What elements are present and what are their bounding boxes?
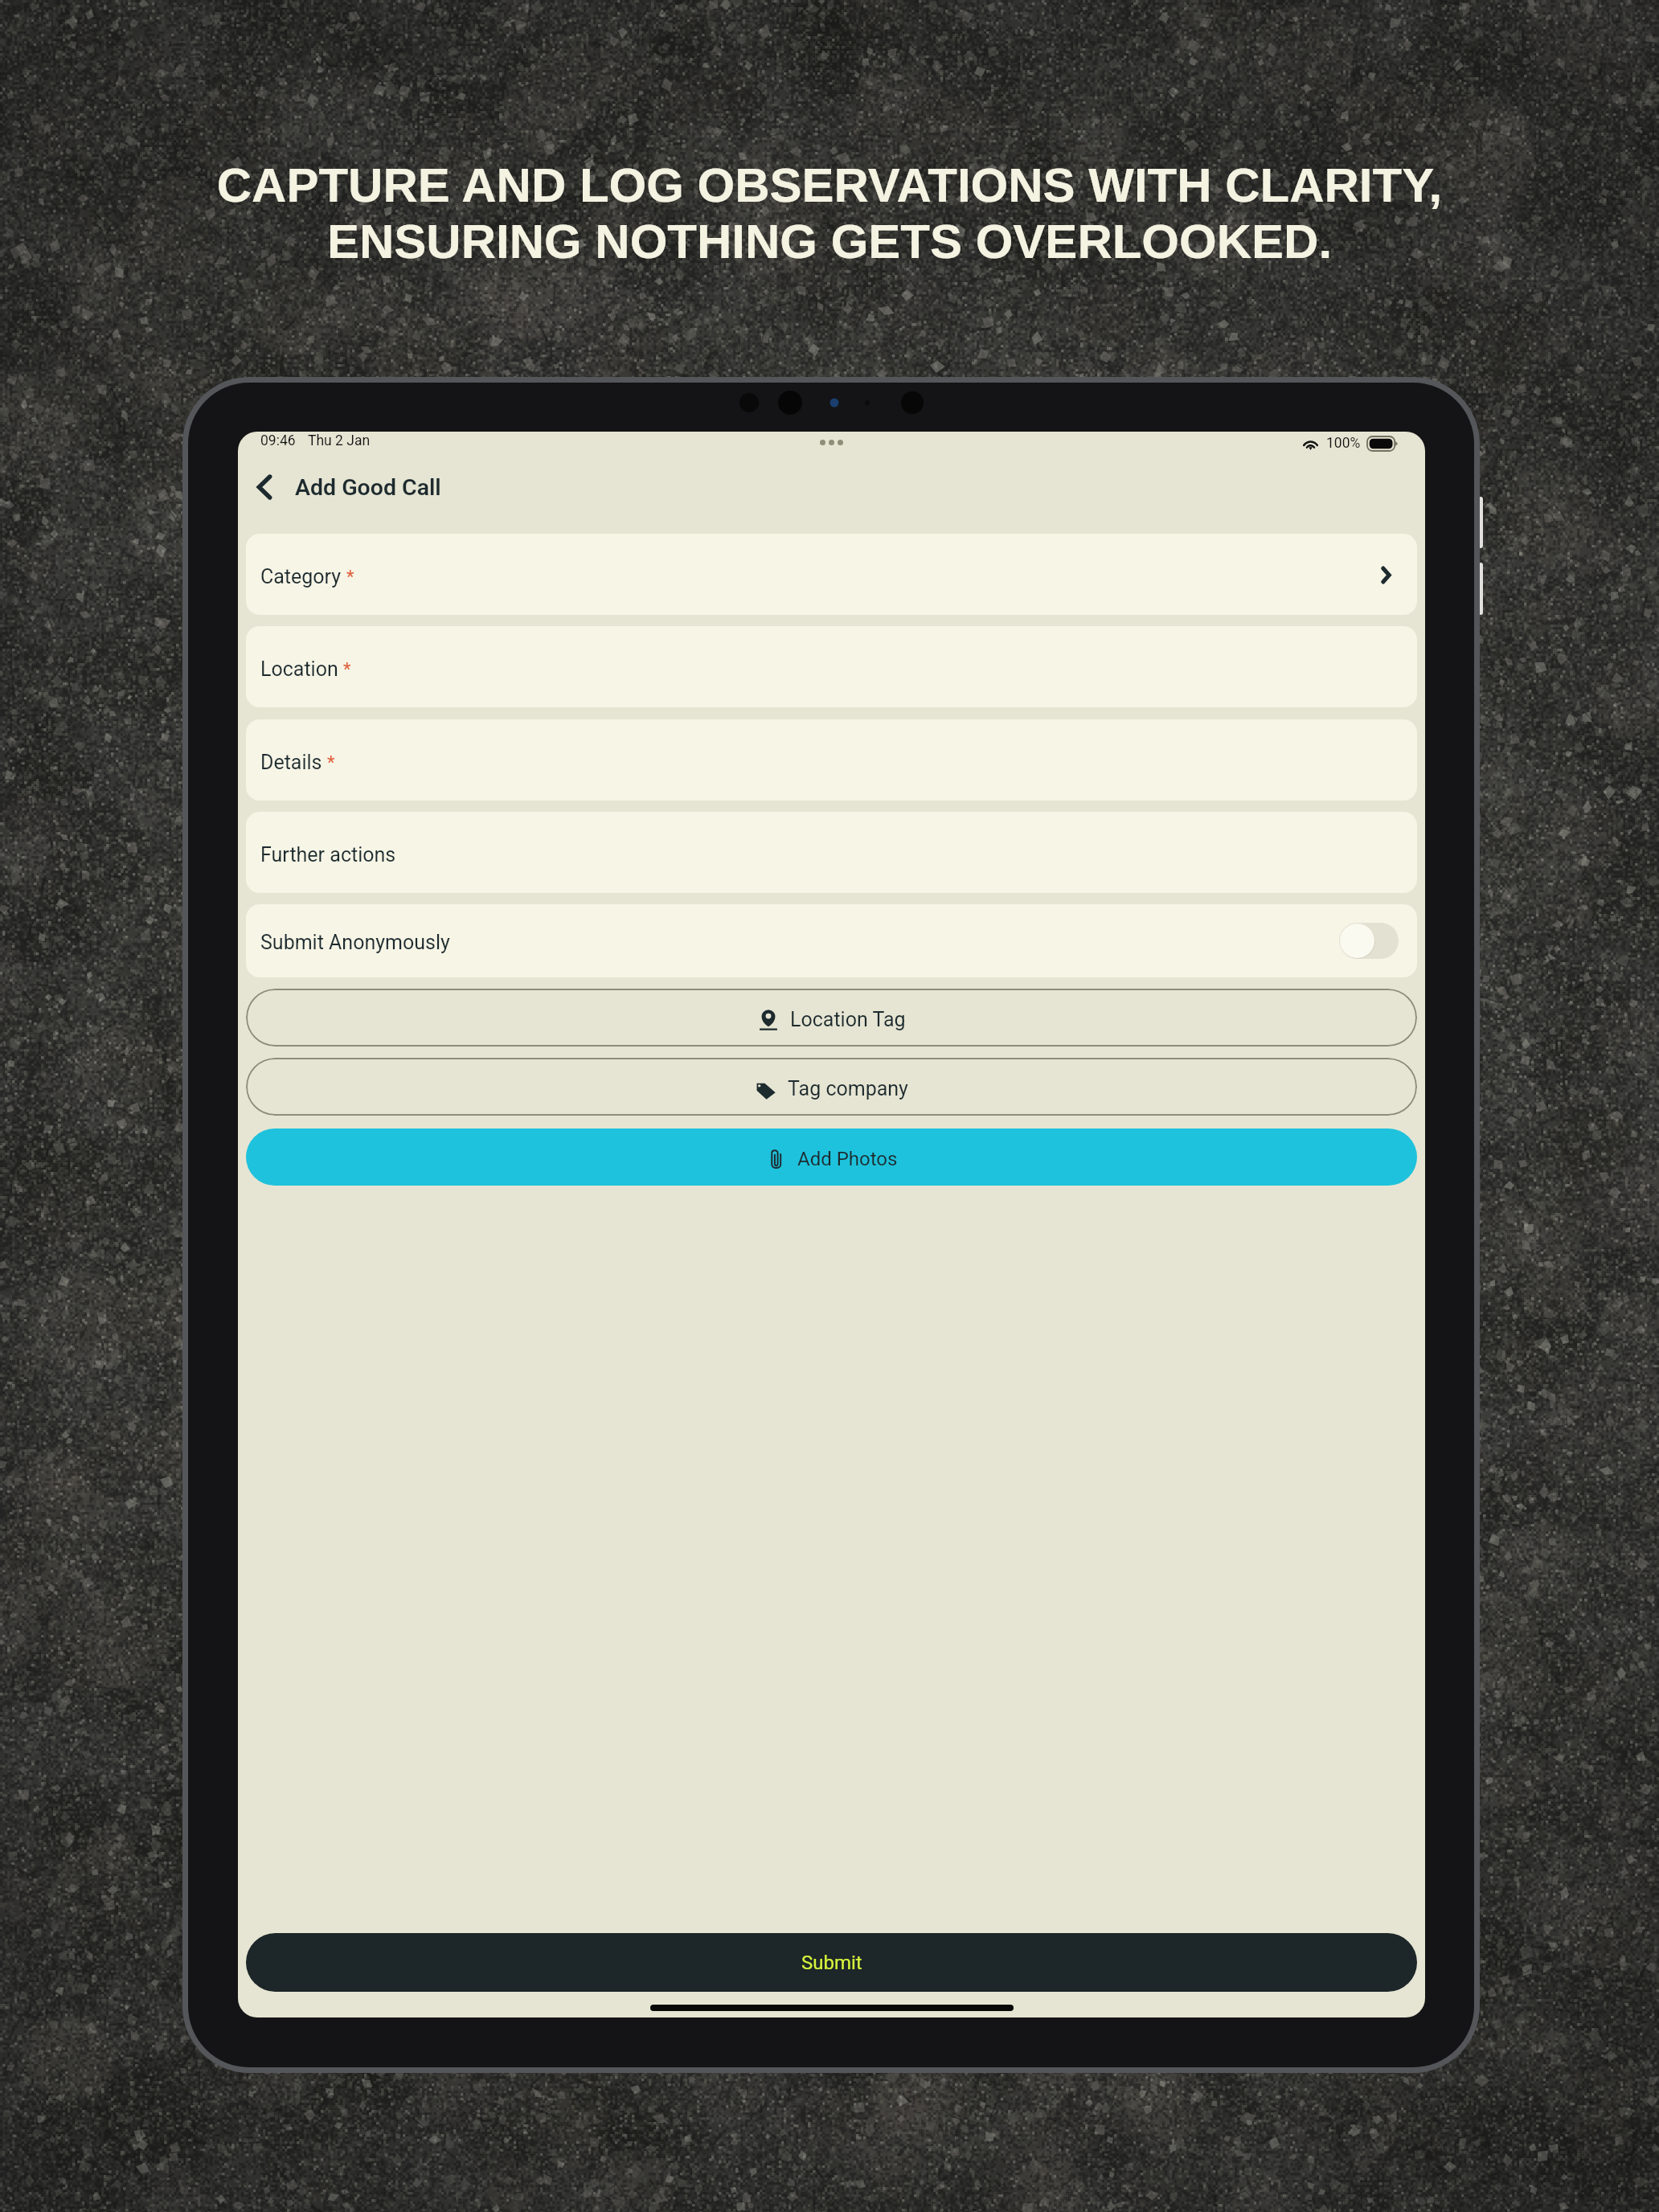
button[interactable]: Add Photos [246, 1129, 1417, 1186]
staticText: Location Tag [790, 1008, 906, 1031]
staticText: Tag company [788, 1077, 908, 1100]
staticText: 09:46 [260, 432, 296, 449]
staticText: Further actions [260, 843, 396, 866]
staticText: CAPTURE AND LOG OBSERVATIONS WITH CLARIT… [0, 158, 1659, 268]
button[interactable]: Location Tag [246, 989, 1417, 1047]
button[interactable]: Details [246, 719, 1417, 801]
staticText: Category [260, 565, 342, 588]
staticText: Details [260, 751, 322, 774]
button[interactable]: Back [244, 467, 441, 507]
staticText: * [327, 752, 335, 773]
staticText: 100% [1326, 435, 1361, 452]
staticText: Thu 2 Jan [308, 432, 371, 449]
staticText: Submit [801, 1952, 862, 1974]
other: Back [244, 467, 285, 507]
button[interactable]: Tag company [246, 1058, 1417, 1116]
button[interactable]: Further actions [246, 812, 1417, 893]
staticText: * [346, 567, 354, 588]
button[interactable]: Submit [246, 1933, 1417, 1992]
button[interactable]: Submit Anonymously [246, 904, 1417, 977]
button[interactable]: Location [246, 626, 1417, 707]
staticText: * [343, 659, 351, 680]
staticText: Add Photos [797, 1148, 898, 1170]
button[interactable]: Category [246, 534, 1417, 615]
staticText: Location [260, 657, 338, 681]
staticText: Add Good Call [295, 474, 441, 501]
staticText: Submit Anonymously [260, 931, 450, 954]
